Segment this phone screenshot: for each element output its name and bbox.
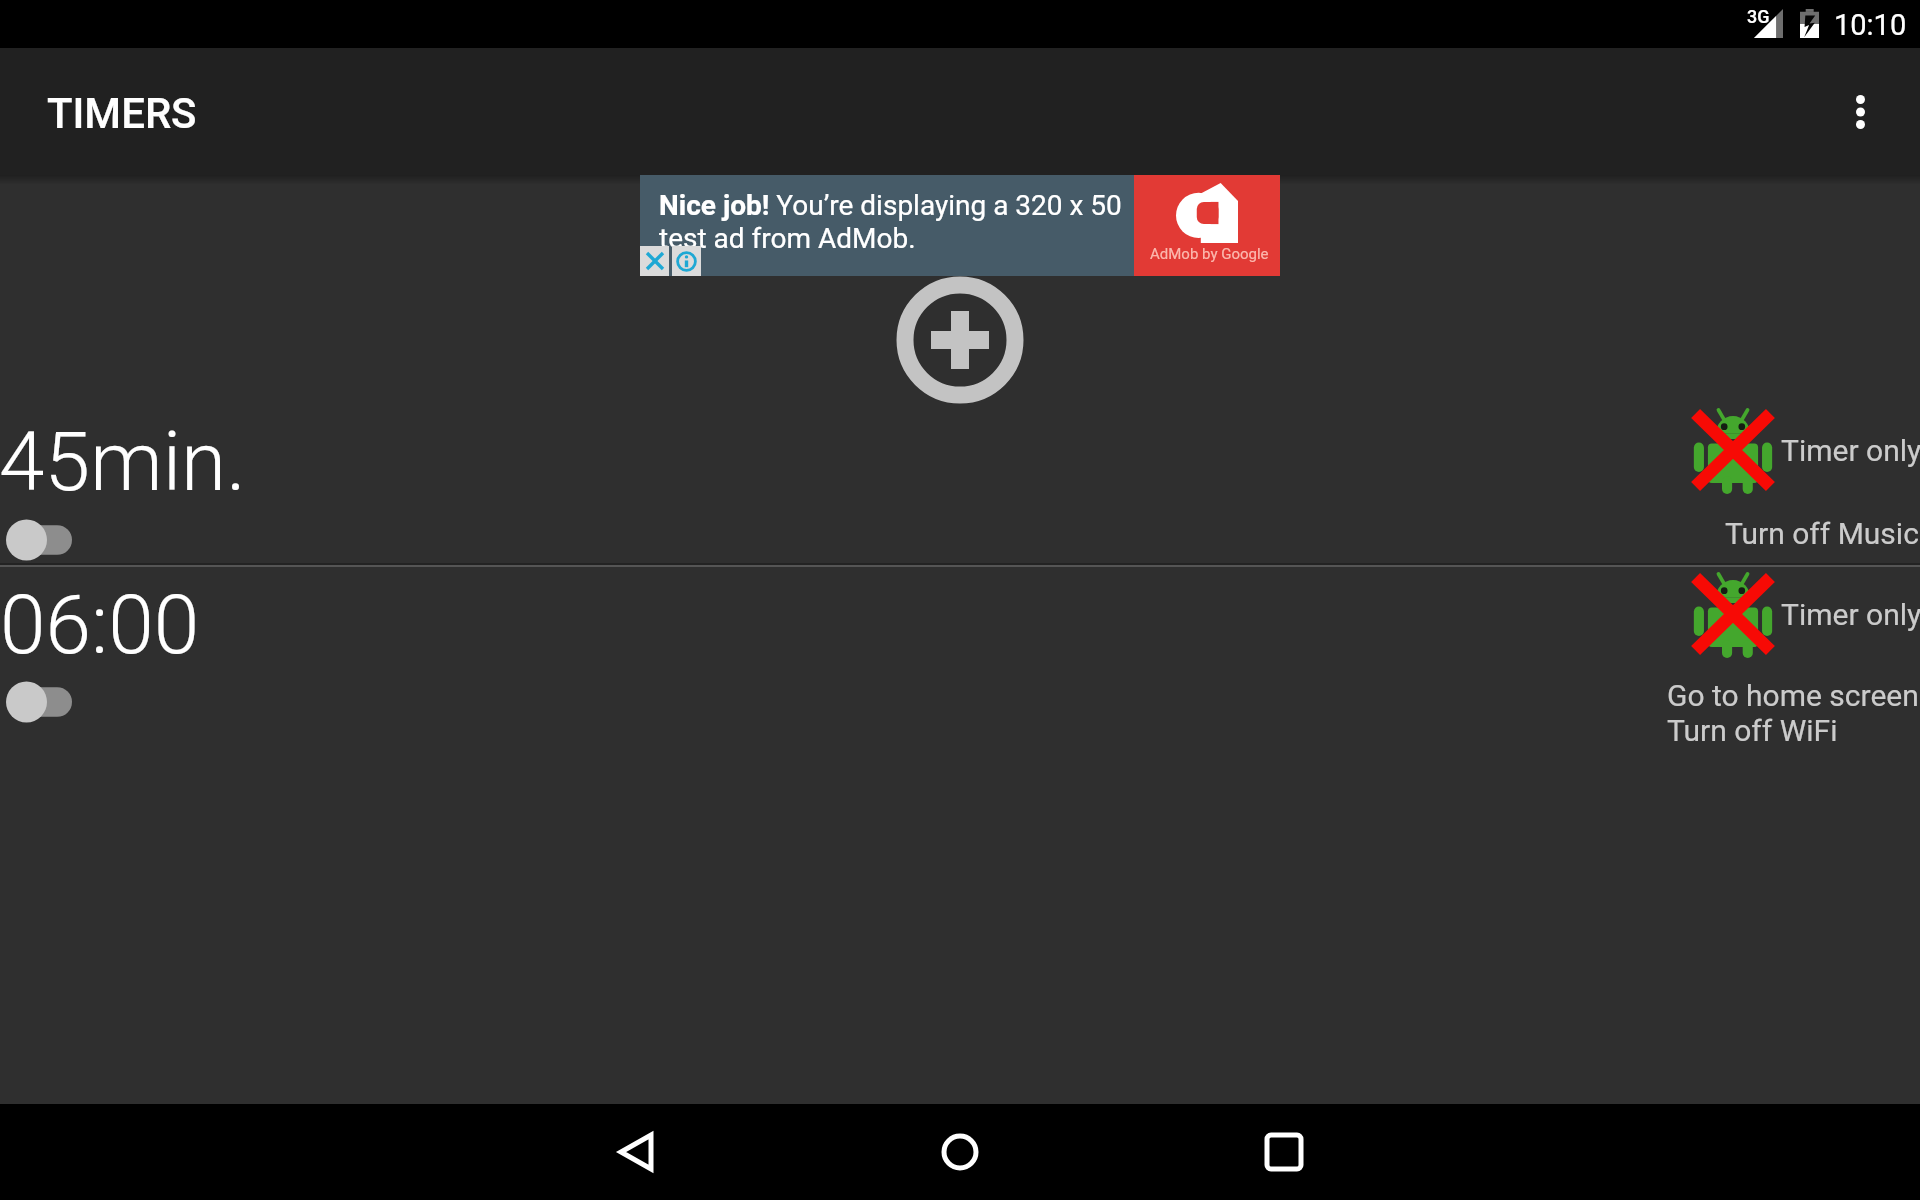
- staticText: Timer only: [1781, 597, 1920, 632]
- staticText: 06:00: [0, 577, 200, 673]
- button[interactable]: Recent apps: [1214, 1104, 1354, 1200]
- button[interactable]: Add timer: [894, 274, 1026, 406]
- staticText: Nice job! You’re displaying a 320 x 50: [659, 189, 1122, 222]
- button[interactable]: More options: [1808, 48, 1912, 175]
- staticText: test ad from AdMob.: [659, 222, 916, 255]
- staticText: Timer only: [1781, 433, 1920, 468]
- staticText: 3G: [1747, 6, 1770, 27]
- button[interactable]: Home: [890, 1104, 1030, 1200]
- staticText: Go to home screen: [1667, 678, 1919, 713]
- button[interactable]: Enable timer: [6, 681, 78, 723]
- staticText: 45min.: [0, 414, 246, 510]
- button[interactable]: Close ad: [640, 246, 669, 276]
- staticText: TIMERS: [47, 89, 197, 138]
- staticText: Turn off Music: [1725, 516, 1919, 551]
- button[interactable]: Nice job! You’re displaying a 320 x 50: [640, 175, 1280, 276]
- button[interactable]: Enable timer: [6, 519, 78, 561]
- button[interactable]: [0, 392, 1920, 564]
- button[interactable]: Back: [566, 1104, 706, 1200]
- staticText: Turn off WiFi: [1667, 713, 1838, 748]
- staticText: 10:10: [1834, 8, 1907, 42]
- button[interactable]: [0, 566, 1920, 738]
- button[interactable]: Ad information: [672, 246, 701, 276]
- staticText: AdMob by Google: [1150, 245, 1269, 263]
